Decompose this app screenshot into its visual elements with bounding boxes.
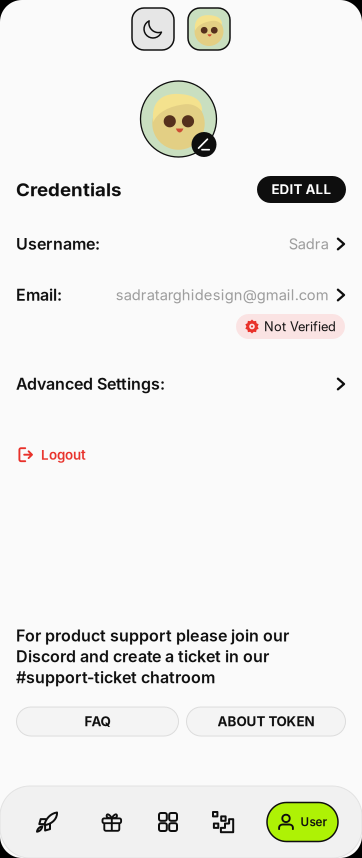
button[interactable]: FAQ (16, 707, 178, 736)
staticText: ABOUT TOKEN (217, 713, 314, 729)
button[interactable]: Explore (23, 799, 71, 845)
staticText: Discord and create a ticket in our (16, 647, 269, 666)
staticText: Advanced Settings: (16, 374, 165, 394)
button[interactable]: Edit profile photo (191, 132, 216, 157)
button[interactable]: Apps (144, 799, 192, 845)
button[interactable]: Logout (0, 442, 362, 468)
staticText: sadratarghidesign@gmail.com (116, 286, 329, 304)
staticText: Email: (16, 285, 62, 305)
button[interactable]: Dark mode (132, 8, 174, 50)
button[interactable]: Email: (0, 282, 362, 308)
staticText: Username: (16, 234, 100, 254)
staticText: For product support please join our (16, 626, 289, 645)
staticText: Logout (41, 447, 86, 463)
button[interactable]: Rewards (88, 799, 136, 845)
button[interactable]: User (267, 802, 338, 841)
button[interactable]: Collections (199, 799, 247, 845)
button[interactable]: ABOUT TOKEN (186, 707, 345, 736)
staticText: Not Verified (264, 319, 336, 334)
staticText: #support-ticket chatroom (16, 668, 215, 687)
staticText: Sadra (289, 235, 329, 253)
button[interactable]: Profile (188, 8, 230, 50)
staticText: FAQ (84, 713, 110, 729)
staticText: User (300, 815, 327, 829)
staticText: Credentials (16, 178, 121, 201)
button[interactable]: Advanced Settings: (0, 371, 362, 397)
staticText: EDIT ALL (271, 181, 331, 197)
button[interactable]: Username: (0, 231, 362, 257)
button[interactable]: EDIT ALL (257, 176, 346, 203)
